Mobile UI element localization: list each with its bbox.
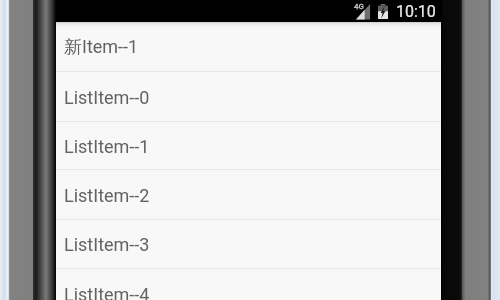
staticText: ListItem--4 (64, 284, 150, 300)
staticText: ListItem--1 (64, 136, 150, 157)
staticText: 10:10 (396, 2, 436, 21)
button[interactable]: ListItem--4 (56, 269, 441, 300)
staticText: 4G (354, 2, 364, 11)
button[interactable]: ListItem--2 (56, 170, 441, 220)
button[interactable]: ListItem--1 (56, 122, 441, 170)
button[interactable]: 新Item--1 (56, 23, 441, 72)
staticText: ListItem--2 (64, 185, 150, 206)
other: Battery charging (378, 4, 388, 19)
button[interactable]: ListItem--3 (56, 220, 441, 269)
staticText: ListItem--0 (64, 87, 150, 108)
staticText: 新Item--1 (64, 36, 139, 59)
button[interactable]: ListItem--0 (56, 72, 441, 122)
other: Mobile signal 4G (355, 3, 371, 21)
staticText: ListItem--3 (64, 234, 150, 255)
